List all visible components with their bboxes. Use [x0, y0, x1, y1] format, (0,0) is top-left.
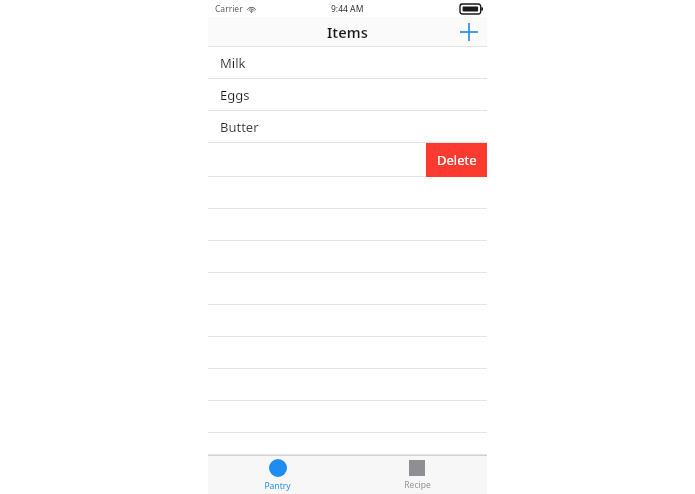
staticText: Eggs	[220, 86, 250, 104]
staticText: Delete	[437, 151, 477, 169]
button[interactable]: Eggs	[208, 79, 487, 111]
staticText: Milk	[220, 54, 246, 72]
button[interactable]: Butter	[208, 111, 487, 143]
staticText: 9:44 AM	[331, 3, 364, 15]
staticText: Carrier	[215, 3, 243, 15]
staticText: Butter	[220, 118, 259, 136]
button[interactable]: Recipe	[347, 455, 487, 494]
button[interactable]: Delete	[426, 143, 487, 177]
button[interactable]: Add item	[451, 17, 487, 47]
button[interactable]: Milk	[208, 47, 487, 79]
staticText: Recipe	[404, 479, 431, 491]
button[interactable]: Pantry	[208, 455, 347, 494]
staticText: Pantry	[264, 480, 291, 492]
staticText: Items	[327, 22, 368, 42]
